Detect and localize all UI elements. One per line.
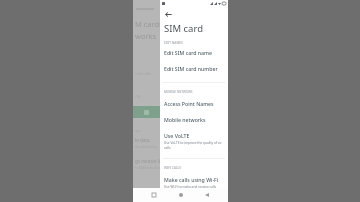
staticText: calls [164, 146, 171, 150]
button[interactable]: Edit SIM card name [160, 49, 228, 56]
staticText: LTE [135, 94, 141, 99]
staticText: gs receive MM [135, 158, 167, 164]
button[interactable]: Back [202, 190, 212, 200]
button[interactable]: Back [163, 9, 173, 19]
staticText: whenever possible [164, 190, 192, 194]
button[interactable]: Mobile networks [160, 116, 228, 123]
staticText: Use VoLTE to improve the quality of vo [164, 141, 222, 145]
button[interactable]: Make calls using Wi-Fi [160, 176, 228, 194]
staticText: this device to ac [135, 145, 158, 149]
staticText: EDIT NAMES [164, 41, 183, 45]
button[interactable]: Use VoLTE [160, 132, 228, 150]
staticText: M cards & [135, 19, 171, 29]
staticText: WIFI CALLS [164, 166, 182, 170]
staticText: MOBILE NETWORK [164, 90, 193, 94]
button[interactable]: Access Point Names [160, 100, 228, 107]
staticText: works [135, 31, 157, 41]
button[interactable]: Recent apps [149, 190, 159, 200]
button[interactable]: Home [176, 190, 186, 200]
staticText: Edit SIM card name [164, 49, 212, 56]
staticText: Use Wi-Fi to make and receive calls [164, 185, 217, 189]
staticText: Mobile networks [164, 116, 206, 123]
staticText: er MMS even whe [135, 166, 160, 170]
staticText: Access Point Names [164, 100, 214, 107]
staticText: rt for calls [135, 71, 151, 76]
button[interactable]: Edit SIM card number [160, 65, 228, 72]
staticText: Make calls using Wi-Fi [164, 176, 219, 183]
staticText: le data [135, 137, 150, 143]
button[interactable] [133, 106, 160, 118]
staticText: Edit SIM card number [164, 65, 218, 72]
staticText: Use VoLTE [164, 132, 190, 139]
staticText: ata [135, 128, 141, 133]
staticText: SIM card settings [164, 22, 228, 35]
